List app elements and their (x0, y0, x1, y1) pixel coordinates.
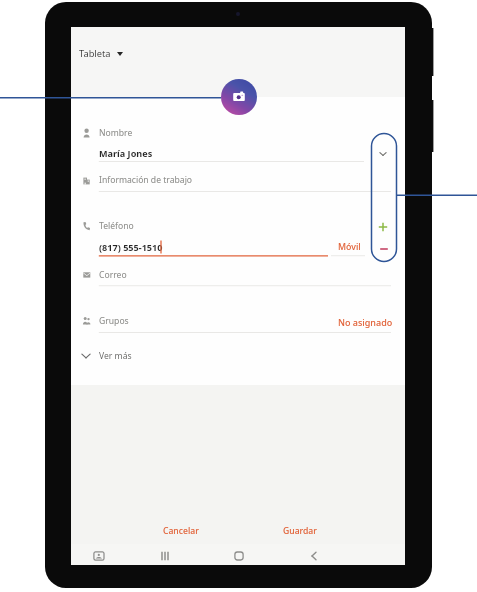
button[interactable]: Correo (71, 267, 405, 283)
button[interactable]: Información de trabajo (71, 172, 405, 188)
button[interactable]: Teléfono (71, 218, 405, 234)
button[interactable]: Tableta (75, 44, 127, 63)
staticText: Guardar (283, 525, 317, 537)
staticText: Ver más (99, 350, 132, 362)
button[interactable]: Guardar (277, 522, 323, 540)
staticText: No asignado (338, 316, 393, 328)
button[interactable]: Cambiar foto (221, 79, 257, 115)
staticText: Cancelar (163, 525, 199, 537)
staticText: Grupos (99, 315, 129, 327)
staticText: (817) 555-1510 (99, 241, 163, 253)
button[interactable]: Agregar teléfono (375, 219, 391, 235)
staticText: María Jones (99, 147, 153, 159)
button[interactable]: Cancelar (157, 522, 205, 540)
button[interactable]: Grupos (71, 313, 405, 329)
button[interactable]: Inicio (231, 548, 247, 564)
staticText: Nombre (99, 127, 133, 139)
button[interactable]: Nombre (71, 125, 405, 141)
staticText: Información de trabajo (99, 174, 193, 186)
staticText: Teléfono (99, 220, 134, 232)
button[interactable]: Captura de pantalla (91, 548, 107, 564)
button[interactable]: Quitar teléfono (376, 241, 392, 257)
button[interactable]: Expandir nombre (375, 146, 391, 162)
staticText: Móvil (338, 241, 361, 253)
staticText: Tableta (79, 47, 111, 60)
staticText: Correo (99, 269, 127, 281)
button[interactable]: Atrás (306, 548, 322, 564)
button[interactable]: Recientes (157, 548, 173, 564)
button[interactable]: Ver más (80, 347, 132, 365)
